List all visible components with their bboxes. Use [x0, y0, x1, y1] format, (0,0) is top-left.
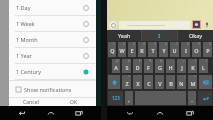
- staticText: T: [151, 47, 155, 54]
- staticText: Yeah: [118, 32, 131, 39]
- staticText: M: [190, 80, 196, 87]
- staticText: O: [194, 47, 199, 54]
- staticText: +: [183, 59, 185, 63]
- button[interactable]: 7: [170, 42, 179, 57]
- staticText: ": [139, 75, 141, 79]
- button[interactable]: Google search: [109, 21, 117, 29]
- staticText: 1 Month: [16, 36, 38, 43]
- staticText: *: [128, 75, 130, 79]
- staticText: 1 Day: [16, 4, 31, 11]
- staticText: B: [169, 80, 173, 87]
- staticText: (: [195, 59, 196, 63]
- button[interactable]: Google Lens camera: [193, 21, 200, 28]
- button[interactable]: .: [188, 91, 196, 105]
- button[interactable]: 2: [118, 42, 126, 57]
- button[interactable]: Back: [123, 106, 137, 120]
- staticText: ,: [128, 96, 130, 103]
- button[interactable]: Cancel: [9, 98, 52, 106]
- button[interactable]: 9: [192, 42, 201, 57]
- button[interactable]: 6: [159, 42, 168, 57]
- staticText: -: [173, 59, 174, 63]
- staticText: 8: [187, 42, 189, 46]
- button[interactable]: 1 Century: [9, 64, 96, 79]
- staticText: Z: [125, 80, 129, 87]
- button[interactable]: Voice search: [203, 21, 211, 29]
- staticText: ;: [173, 75, 174, 79]
- button[interactable]: 4: [138, 42, 146, 57]
- staticText: #: [128, 59, 130, 63]
- staticText: X: [136, 80, 140, 87]
- button[interactable]: Yeah: [107, 30, 141, 41]
- button[interactable]: :: [155, 75, 164, 89]
- button[interactable]: ): [199, 59, 208, 73]
- staticText: ': [151, 75, 152, 79]
- staticText: V: [158, 80, 162, 87]
- button[interactable]: OK: [52, 98, 96, 106]
- button[interactable]: 1 Day: [9, 0, 96, 15]
- button[interactable]: Recent apps: [72, 106, 86, 120]
- staticText: I: [185, 47, 187, 54]
- staticText: D: [135, 64, 140, 71]
- button[interactable]: $: [133, 59, 142, 73]
- button[interactable]: 0: [203, 42, 212, 57]
- button[interactable]: 1: [108, 42, 116, 57]
- staticText: 123: [112, 95, 120, 101]
- button[interactable]: Enter: [198, 91, 212, 105]
- button[interactable]: ,: [125, 91, 133, 105]
- button[interactable]: ?: [188, 75, 197, 89]
- button[interactable]: Recent apps: [183, 106, 197, 120]
- button[interactable]: 5: [148, 42, 157, 57]
- staticText: 4: [143, 42, 145, 46]
- button[interactable]: @: [112, 59, 120, 73]
- staticText: 3: [133, 42, 135, 46]
- button[interactable]: +: [177, 59, 186, 73]
- button[interactable]: Back: [15, 106, 29, 120]
- button[interactable]: 1 Month: [9, 32, 96, 47]
- button[interactable]: 1 Week: [9, 16, 96, 31]
- button[interactable]: *: [122, 75, 131, 89]
- button[interactable]: ': [144, 75, 153, 89]
- staticText: .: [191, 96, 193, 103]
- staticText: Show notifications: [24, 86, 72, 93]
- button[interactable]: Backspace: [199, 75, 212, 89]
- staticText: 6: [165, 42, 167, 46]
- staticText: 9: [198, 42, 200, 46]
- staticText: Okay: [189, 32, 203, 39]
- button[interactable]: 1 Year: [9, 48, 96, 63]
- staticText: Q: [110, 47, 115, 54]
- button[interactable]: -: [166, 59, 175, 73]
- staticText: W: [119, 47, 125, 54]
- staticText: F: [147, 64, 150, 71]
- staticText: P: [206, 47, 210, 54]
- button[interactable]: ": [133, 75, 142, 89]
- staticText: 2: [123, 42, 125, 46]
- staticText: 7: [176, 42, 178, 46]
- button[interactable]: Home: [44, 106, 58, 120]
- staticText: G: [158, 64, 162, 71]
- staticText: &: [160, 59, 163, 63]
- button[interactable]: 123: [108, 91, 123, 105]
- button[interactable]: Okay: [178, 30, 213, 41]
- button[interactable]: (: [188, 59, 197, 73]
- staticText: :: [162, 75, 163, 79]
- button[interactable]: ;: [166, 75, 175, 89]
- button[interactable]: [119, 21, 190, 29]
- button[interactable]: #: [122, 59, 131, 73]
- button[interactable]: &: [155, 59, 164, 73]
- staticText: I: [158, 32, 161, 40]
- button[interactable]: 8: [181, 42, 190, 57]
- button[interactable]: I: [142, 30, 177, 41]
- button[interactable]: 3: [128, 42, 136, 57]
- button[interactable]: Home: [153, 106, 167, 120]
- staticText: 1 Century: [16, 68, 42, 75]
- staticText: A: [114, 64, 118, 71]
- button[interactable]: !: [177, 75, 186, 89]
- staticText: ?: [194, 75, 196, 79]
- staticText: %: [149, 59, 152, 63]
- button[interactable]: Show notifications: [9, 81, 96, 97]
- staticText: 5: [154, 42, 156, 46]
- button[interactable]: Shift: [108, 75, 120, 89]
- button[interactable]: %: [144, 59, 153, 73]
- staticText: 0: [209, 42, 211, 46]
